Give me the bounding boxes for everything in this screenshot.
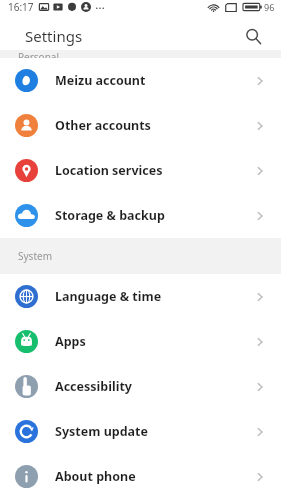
button[interactable]: Accessibility (0, 364, 281, 409)
staticText: System (18, 249, 52, 263)
staticText: Accessibility (55, 378, 253, 395)
button[interactable]: Search (241, 24, 265, 48)
staticText: Meizu account (55, 72, 253, 89)
staticText: Settings (25, 26, 83, 46)
staticText: 96 (264, 1, 275, 13)
staticText: System update (55, 423, 253, 440)
staticText: Apps (55, 333, 253, 350)
staticText: Personal (18, 50, 60, 58)
button[interactable]: Storage & backup (0, 193, 281, 238)
button[interactable]: Apps (0, 319, 281, 364)
button[interactable]: Language & time (0, 274, 281, 319)
button[interactable]: Meizu account (0, 58, 281, 103)
button[interactable]: System update (0, 409, 281, 454)
staticText: Storage & backup (55, 207, 253, 224)
button[interactable]: About phone (0, 454, 281, 499)
staticText: Location services (55, 162, 253, 179)
button[interactable]: Other accounts (0, 103, 281, 148)
staticText: About phone (55, 468, 253, 485)
button[interactable]: Location services (0, 148, 281, 193)
staticText: Language & time (55, 288, 253, 305)
staticText: Other accounts (55, 117, 253, 134)
staticText: 16:17 (8, 0, 34, 14)
